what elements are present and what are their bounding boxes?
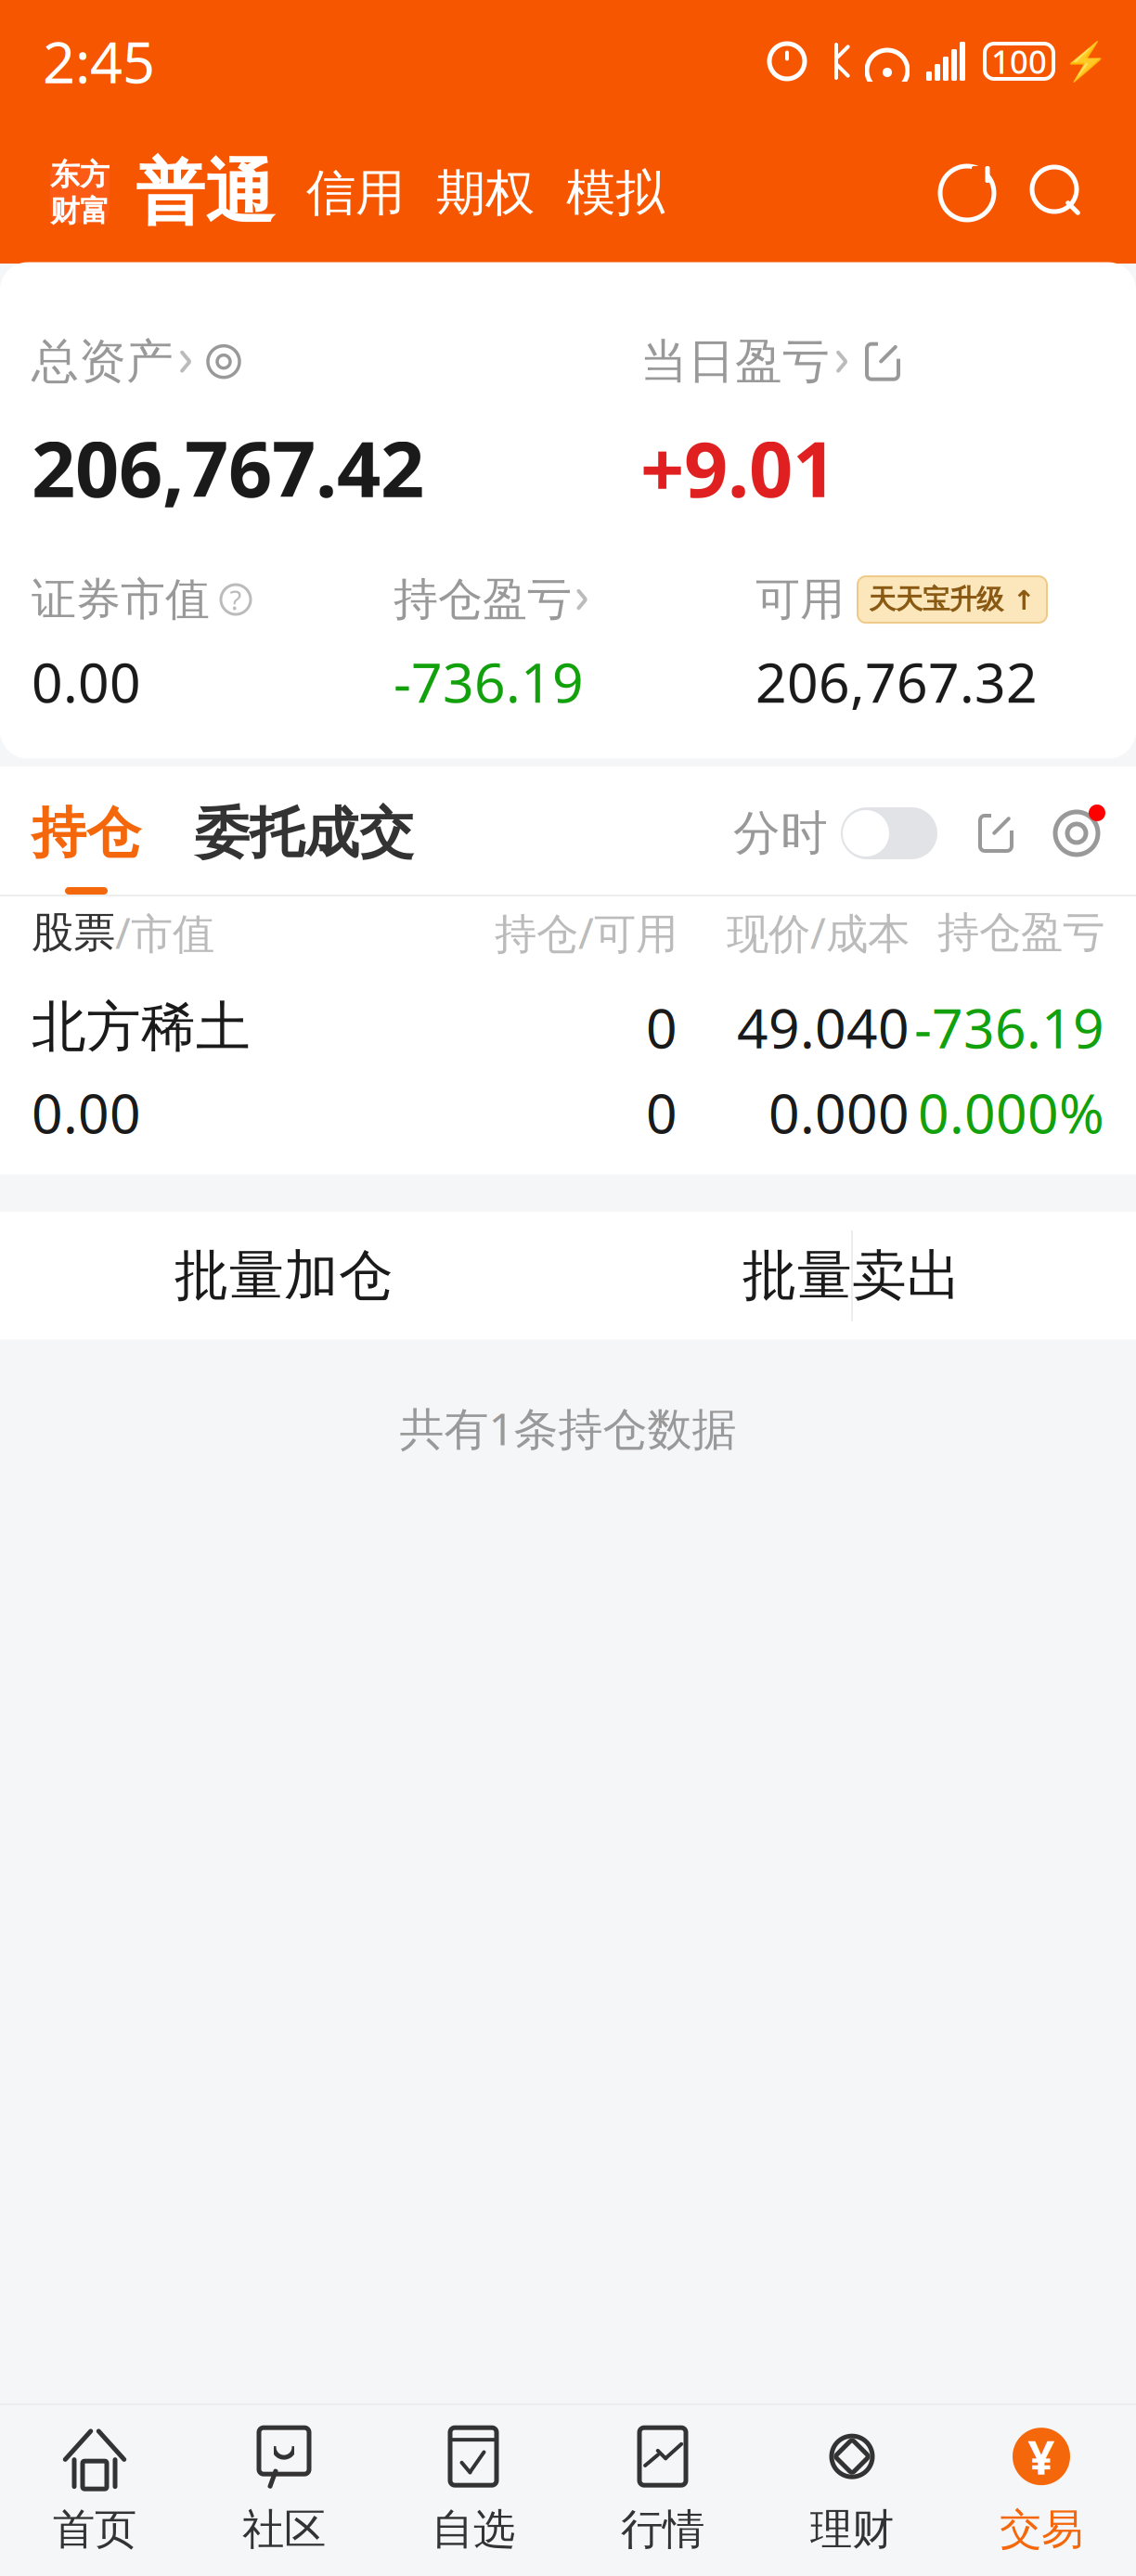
button[interactable]: 东方财富: [50, 157, 110, 229]
staticText: 0: [646, 991, 678, 1063]
staticText: 理财: [810, 2504, 894, 2555]
button[interactable]: 天天宝升级 ↑: [858, 576, 1047, 623]
staticText: 当日盈亏: [640, 333, 830, 390]
staticText: 持仓/可用: [495, 905, 678, 961]
staticText: 0.00: [32, 645, 141, 718]
staticText: 东方: [50, 157, 110, 193]
button[interactable]: ¥: [947, 2416, 1136, 2563]
button[interactable]: 普通: [110, 150, 275, 236]
staticText: 共有1条持仓数据: [400, 1398, 736, 1457]
staticText: 财富: [50, 193, 110, 229]
staticText: -736.19: [394, 645, 584, 718]
button[interactable]: 分时: [733, 804, 937, 890]
staticText: 证券市值: [32, 572, 210, 627]
button[interactable]: 模拟: [535, 163, 665, 223]
button[interactable]: 持仓: [32, 800, 141, 867]
staticText: 0.00: [32, 1076, 141, 1149]
staticText: 可用: [755, 572, 845, 627]
staticText: 自选: [432, 2504, 515, 2555]
staticText: 社区: [242, 2504, 326, 2555]
staticText: 现价/成本: [727, 905, 910, 961]
staticText: ⚡: [1063, 40, 1109, 82]
button[interactable]: 社区: [189, 2416, 379, 2563]
staticText: +9.01: [640, 416, 836, 518]
staticText: 批量卖出: [742, 1242, 962, 1309]
staticText: 49.040: [737, 991, 910, 1063]
button[interactable]: 设置: [1017, 805, 1104, 889]
staticText: 2:45: [43, 23, 155, 99]
button[interactable]: 理财: [757, 2416, 947, 2563]
button[interactable]: 搜索: [1004, 156, 1095, 230]
staticText: -736.19: [914, 991, 1104, 1063]
button[interactable]: 行情: [568, 2416, 757, 2563]
button[interactable]: 刷新: [930, 156, 1004, 230]
button[interactable]: 持仓盈亏: [394, 572, 590, 627]
staticText: 交易: [1000, 2504, 1083, 2555]
staticText: 期权: [436, 163, 535, 223]
staticText: 普通: [136, 150, 275, 236]
staticText: 206,767.32: [755, 645, 1038, 718]
staticText: 批量加仓: [174, 1242, 394, 1309]
staticText: 首页: [53, 2504, 136, 2555]
staticText: 模拟: [566, 163, 665, 223]
button[interactable]: 北方稀土: [0, 969, 1136, 1175]
button[interactable]: 期权: [405, 163, 535, 223]
staticText: 0: [646, 1076, 678, 1149]
button[interactable]: 信用: [275, 163, 405, 223]
staticText: 总资产: [32, 333, 174, 390]
staticText: 北方稀土: [32, 994, 251, 1061]
staticText: 持仓盈亏: [937, 907, 1104, 958]
staticText: 持仓盈亏: [394, 572, 572, 627]
button[interactable]: 当日盈亏: [640, 333, 904, 390]
staticText: 持仓: [32, 800, 141, 867]
button[interactable]: 分享: [937, 812, 1017, 882]
staticText: 信用: [306, 163, 405, 223]
staticText: 100: [991, 40, 1047, 83]
staticText: 0.000: [768, 1076, 910, 1149]
staticText: 分时: [733, 804, 828, 862]
staticText: /市值: [115, 905, 214, 961]
staticText: 206,767.42: [32, 416, 424, 518]
staticText: 天天宝升级 ↑: [869, 583, 1036, 616]
button[interactable]: 委托成交: [141, 800, 414, 895]
staticText: 股票: [32, 907, 115, 958]
button[interactable]: 自选: [379, 2416, 568, 2563]
button[interactable]: 首页: [0, 2416, 189, 2563]
button[interactable]: 批量卖出: [568, 1212, 1136, 1340]
staticText: ?: [230, 581, 242, 618]
staticText: 行情: [621, 2504, 704, 2555]
staticText: ¥: [1028, 2425, 1055, 2488]
button[interactable]: 总资产: [32, 333, 242, 390]
button[interactable]: 批量加仓: [0, 1212, 568, 1340]
staticText: 委托成交: [195, 800, 414, 867]
staticText: 0.000%: [918, 1076, 1104, 1149]
